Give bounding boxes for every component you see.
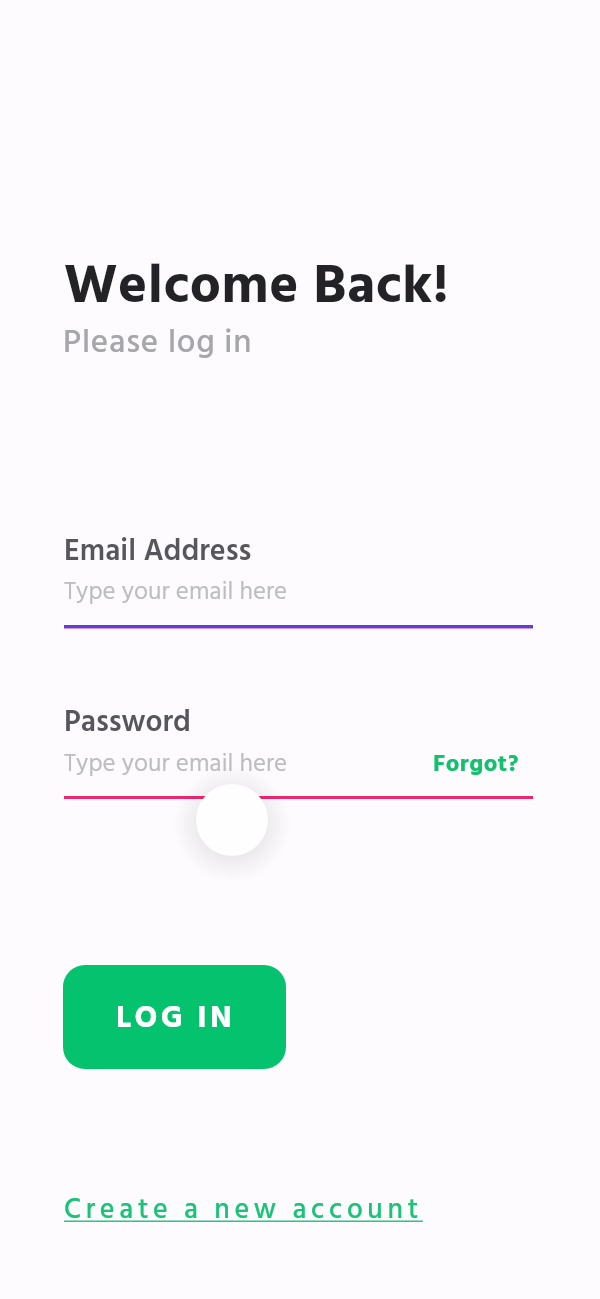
button[interactable]: LOG IN [63,965,286,1069]
staticText: Email Address [64,528,252,576]
button[interactable]: Forgot? [433,746,520,784]
staticText: Type your email here [64,573,288,613]
staticText: Password [64,699,191,747]
staticText: Type your email here [64,745,288,785]
staticText: Please log in [63,317,253,370]
button[interactable]: Create a new account [64,1188,423,1233]
button[interactable]: Type your email here [64,738,533,799]
button[interactable]: Type your email here [64,566,534,629]
staticText: LOG IN [116,994,236,1044]
staticText: Welcome Back! [64,244,450,332]
